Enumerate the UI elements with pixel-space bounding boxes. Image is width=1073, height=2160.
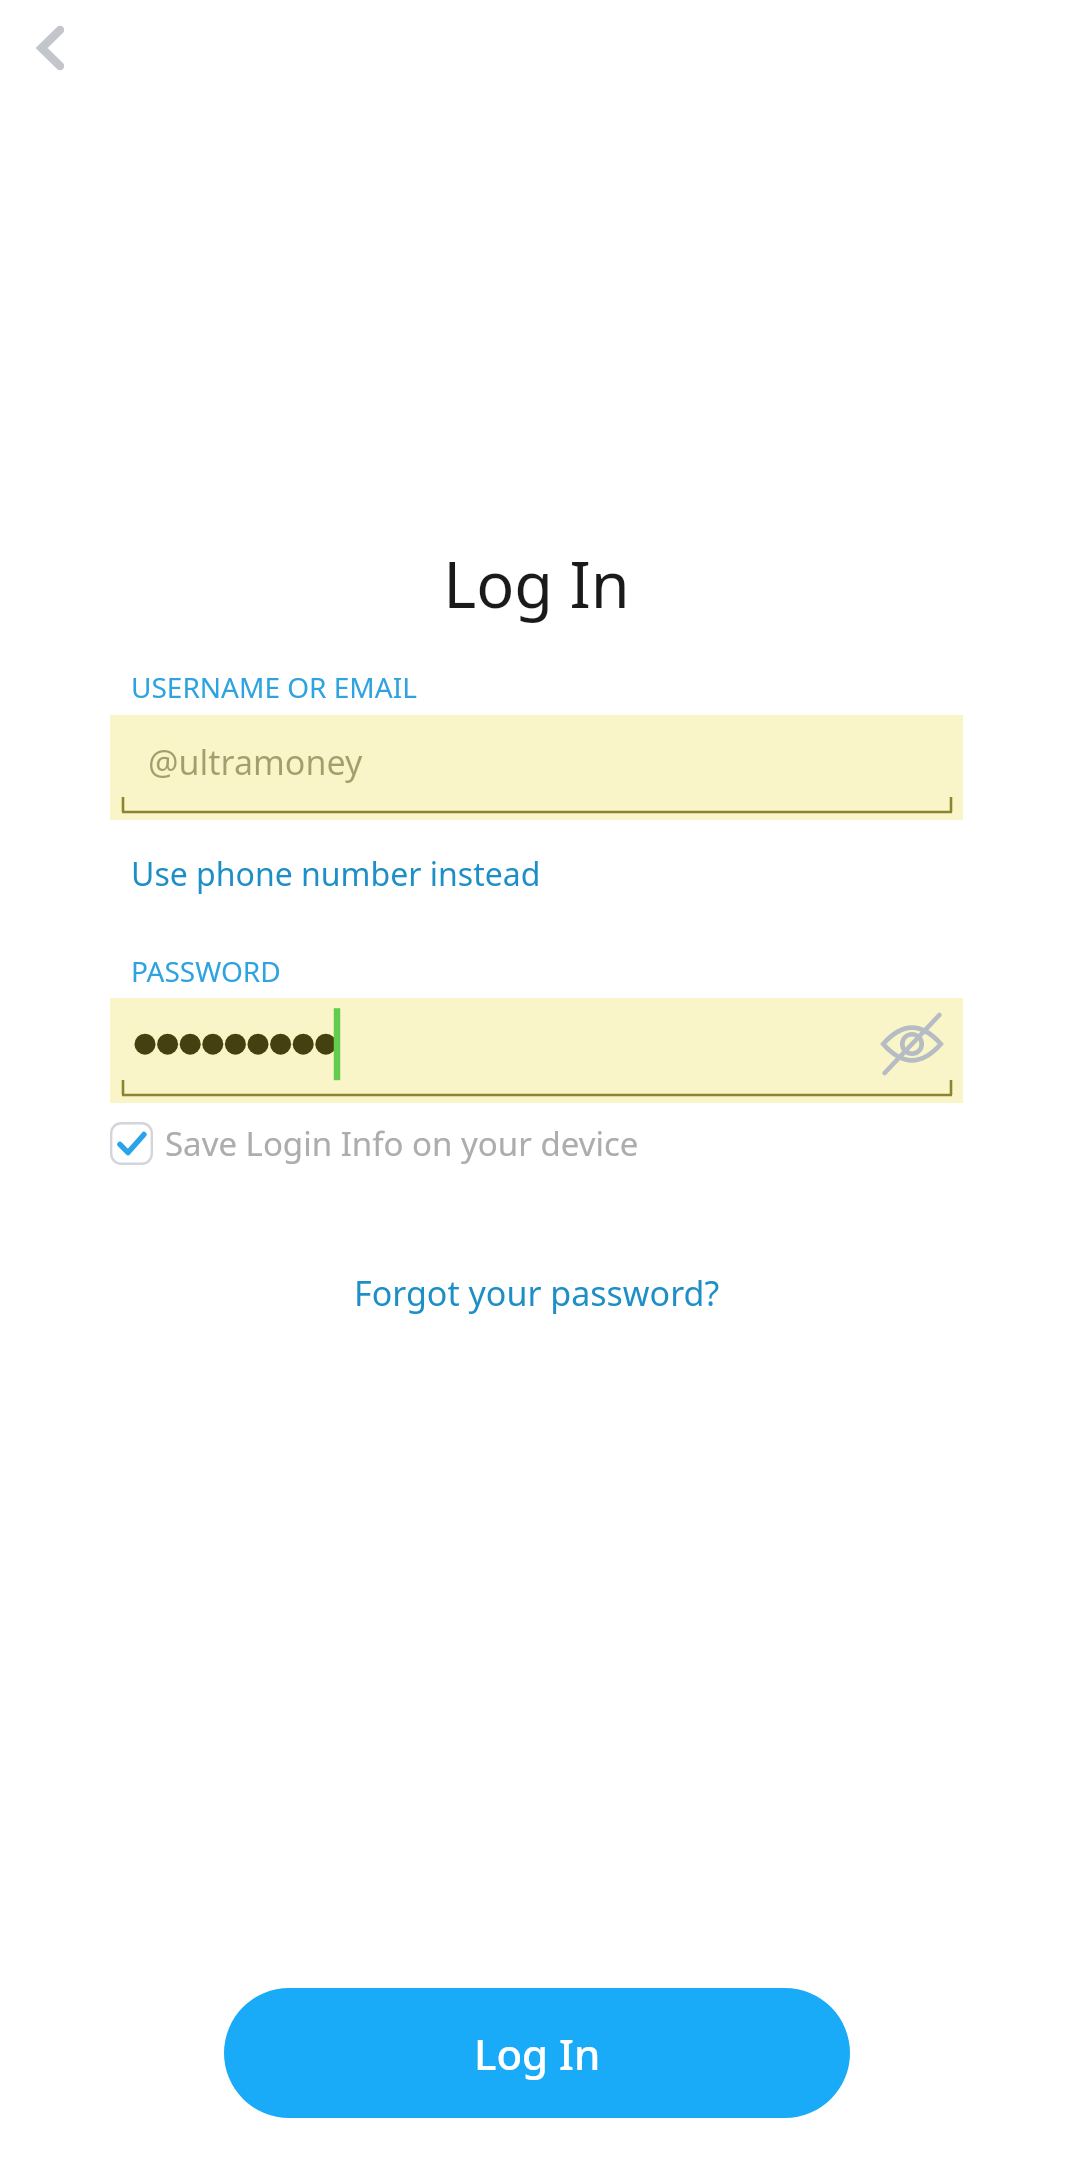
staticText: Log In xyxy=(0,541,1073,627)
staticText: Use phone number instead xyxy=(131,852,541,896)
button[interactable]: Show password xyxy=(876,1008,948,1080)
button[interactable]: Back xyxy=(10,8,90,88)
staticText: Log In xyxy=(474,2025,601,2082)
button[interactable]: Use phone number instead xyxy=(131,852,541,896)
staticText: @ultramoney xyxy=(148,739,363,785)
staticText: USERNAME OR EMAIL xyxy=(131,668,417,706)
staticText: PASSWORD xyxy=(131,952,281,990)
staticText: Save Login Info on your device xyxy=(165,1121,639,1166)
button[interactable]: @ultramoney xyxy=(110,715,963,820)
button[interactable]: Forgot your password? xyxy=(354,1270,720,1316)
button[interactable]: Save Login Info on your device xyxy=(104,1112,604,1174)
staticText: Forgot your password? xyxy=(354,1270,720,1316)
button[interactable] xyxy=(110,998,963,1103)
button[interactable]: Log In xyxy=(224,1988,850,2118)
